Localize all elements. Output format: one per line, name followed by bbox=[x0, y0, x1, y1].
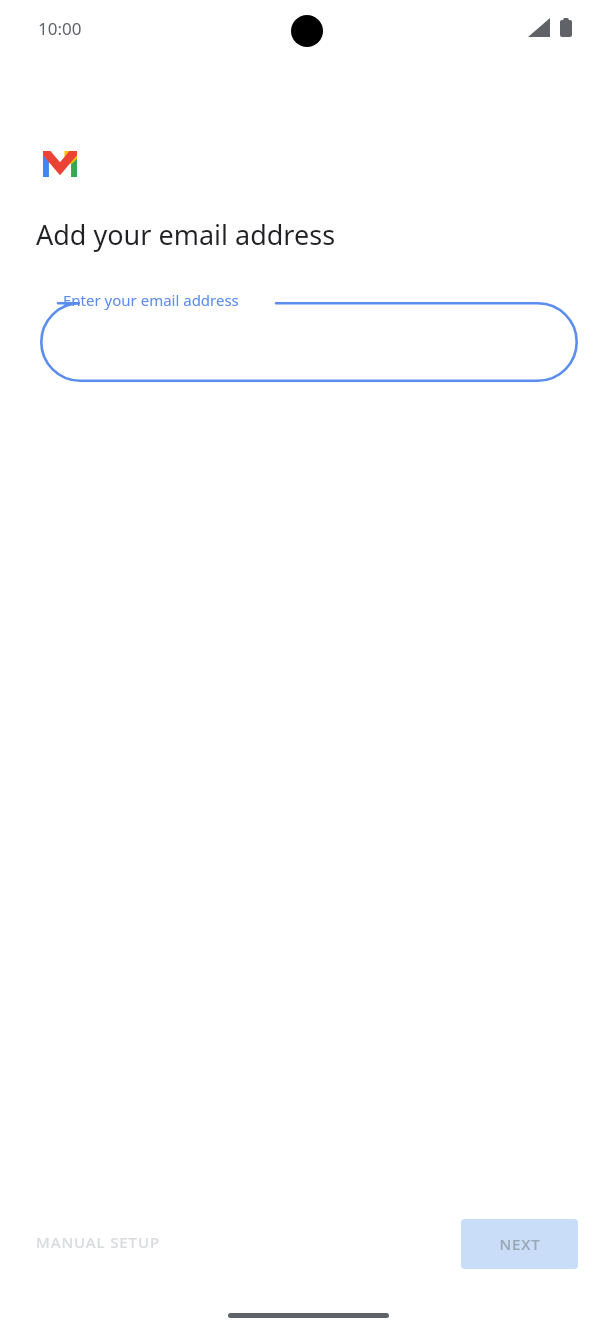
staticText: Enter your email address bbox=[63, 290, 239, 310]
staticText: Add your email address bbox=[36, 216, 336, 253]
button[interactable]: NEXT bbox=[461, 1219, 578, 1269]
staticText: 10:00 bbox=[38, 17, 82, 40]
button[interactable]: Enter your email address bbox=[40, 302, 578, 382]
staticText: NEXT bbox=[499, 1234, 541, 1254]
button[interactable]: MANUAL SETUP bbox=[36, 1232, 160, 1252]
